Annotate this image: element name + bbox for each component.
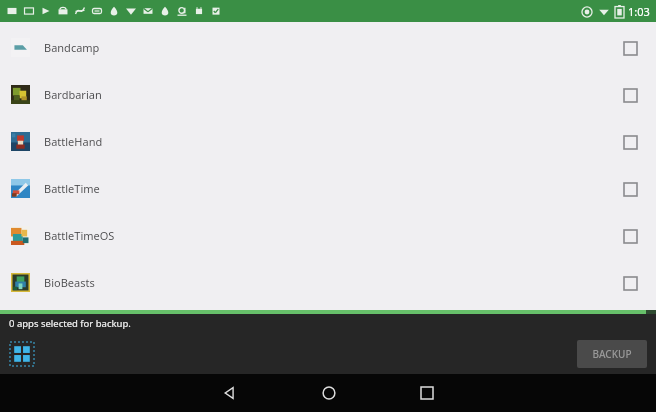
button[interactable]: Select BioBeasts xyxy=(615,268,645,298)
button[interactable]: BattleTimeOS xyxy=(0,212,656,259)
button[interactable]: BattleTime xyxy=(0,165,656,212)
staticText: Bandcamp xyxy=(44,40,100,55)
button[interactable]: Select Bardbarian xyxy=(615,80,645,110)
button[interactable]: Bardbarian xyxy=(0,71,656,118)
staticText: BioBeasts xyxy=(44,275,95,290)
staticText: BattleHand xyxy=(44,134,103,149)
staticText: Bardbarian xyxy=(44,87,102,102)
staticText: BACKUP xyxy=(592,347,632,361)
staticText: 0 apps selected for backup. xyxy=(9,317,131,330)
staticText: 1:03 xyxy=(628,4,650,19)
button[interactable]: BattleHand xyxy=(0,118,656,165)
button[interactable]: Select BattleTime xyxy=(615,174,645,204)
button[interactable]: Select Bandcamp xyxy=(615,33,645,63)
button[interactable]: Bandcamp xyxy=(0,24,656,71)
button[interactable]: Recent apps xyxy=(410,376,444,410)
button[interactable]: Select BattleTimeOS xyxy=(615,221,645,251)
button[interactable]: BioBeasts xyxy=(0,259,656,306)
button[interactable]: Back xyxy=(213,376,247,410)
staticText: BattleTime xyxy=(44,181,100,196)
button[interactable]: Home xyxy=(312,376,346,410)
button[interactable]: BACKUP xyxy=(577,340,647,368)
button[interactable]: Select all apps xyxy=(9,341,35,367)
button[interactable]: Select BattleHand xyxy=(615,127,645,157)
staticText: BattleTimeOS xyxy=(44,228,115,243)
